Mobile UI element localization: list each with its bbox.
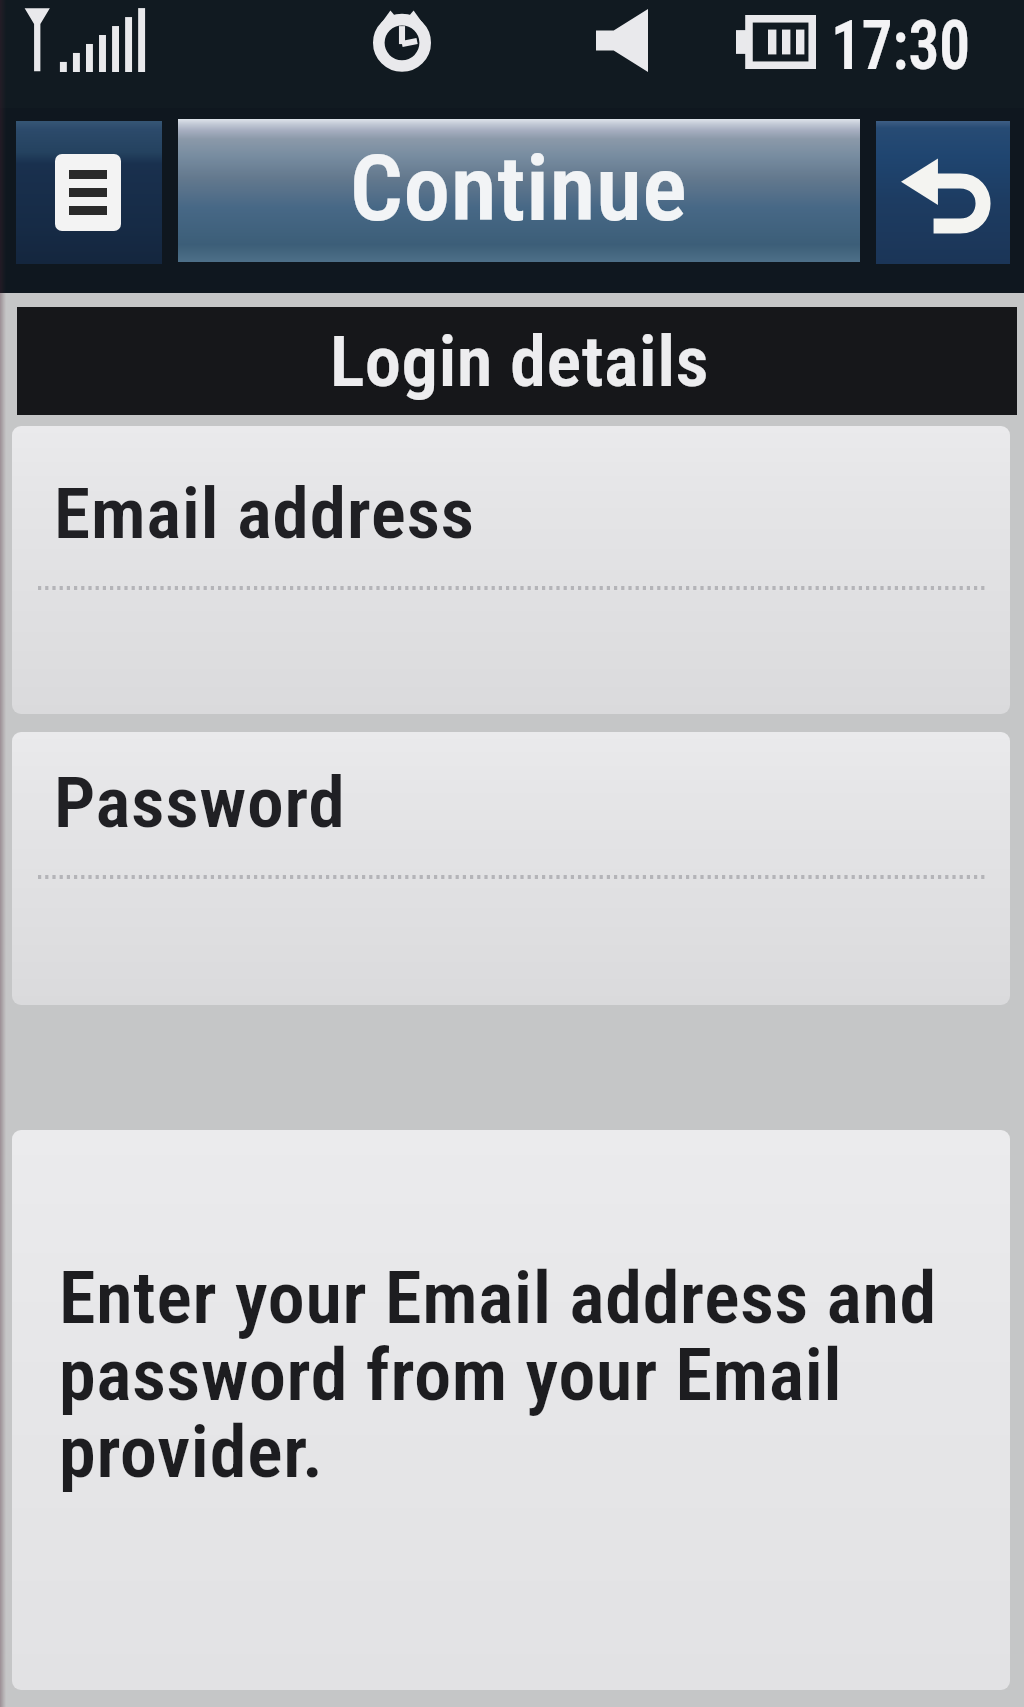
staticText: Password (54, 761, 346, 844)
staticText: Email address (54, 472, 475, 555)
staticText: 17:30 (831, 6, 970, 86)
button[interactable]: Enter your Email address and password fr… (12, 1130, 1010, 1690)
button[interactable]: Menu (16, 121, 162, 264)
button[interactable]: Password (12, 732, 1010, 1005)
staticText: Continue (350, 137, 688, 242)
button[interactable]: Continue (178, 119, 860, 262)
button[interactable]: Email address (12, 426, 1010, 714)
staticText: Login details (330, 321, 710, 403)
staticText: Enter your Email address and password fr… (59, 1256, 959, 1495)
button[interactable]: Back (876, 121, 1010, 264)
